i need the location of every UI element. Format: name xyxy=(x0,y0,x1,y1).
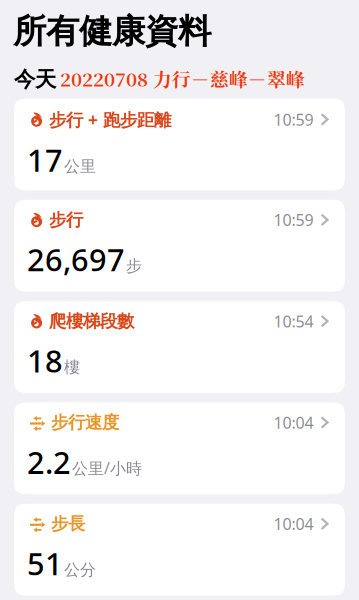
staticText: 10:54 xyxy=(273,310,313,332)
staticText: 18 xyxy=(27,340,63,381)
staticText: 20220708 力行－慈峰－翠峰 xyxy=(60,65,305,92)
staticText: 公里/小時 xyxy=(72,457,142,478)
staticText: 10:59 xyxy=(273,209,313,230)
staticText: 步長 xyxy=(51,513,85,534)
staticText: 2.2 xyxy=(27,442,71,482)
staticText: 所有健康資料 xyxy=(13,11,211,52)
staticText: 26,697 xyxy=(27,239,125,280)
staticText: 步行 + 跑步距離 xyxy=(49,108,171,131)
staticText: 17 xyxy=(27,139,63,180)
staticText: 公分 xyxy=(64,560,96,580)
button[interactable]: 爬樓梯段數 xyxy=(14,301,345,393)
button[interactable]: 步行 + 跑步距離 xyxy=(14,98,345,190)
staticText: 步行 xyxy=(49,209,83,230)
staticText: 步 xyxy=(126,256,142,276)
button[interactable]: 步行速度 xyxy=(14,402,345,494)
button[interactable]: 步行 xyxy=(14,200,345,292)
staticText: 公里 xyxy=(64,156,96,176)
staticText: 10:59 xyxy=(273,109,313,130)
button[interactable]: 步長 xyxy=(14,504,345,596)
staticText: 51 xyxy=(27,543,63,584)
staticText: 樓 xyxy=(64,357,80,377)
staticText: 10:04 xyxy=(273,412,313,433)
staticText: 爬樓梯段數 xyxy=(49,310,134,332)
staticText: 10:04 xyxy=(273,513,313,534)
staticText: 步行速度 xyxy=(51,412,119,433)
staticText: 今天 xyxy=(14,66,56,92)
